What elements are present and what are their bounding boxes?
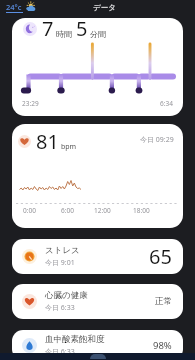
staticText: 時間 bbox=[56, 29, 72, 39]
staticText: 今日 6:33 bbox=[45, 347, 75, 357]
staticText: 98% bbox=[153, 339, 172, 352]
staticText: 23:29 bbox=[22, 99, 39, 108]
staticText: 6:34 bbox=[160, 99, 173, 108]
staticText: 0:00 bbox=[23, 206, 36, 215]
staticText: 6:00 bbox=[61, 206, 74, 215]
button[interactable]: 心臓の健康 bbox=[12, 284, 183, 319]
staticText: ストレス bbox=[45, 245, 80, 256]
staticText: 65 bbox=[149, 243, 172, 270]
staticText: 正常 bbox=[155, 296, 172, 307]
staticText: 24°c bbox=[6, 2, 22, 12]
button[interactable]: 血中酸素飽和度 bbox=[12, 330, 183, 360]
staticText: 今日 9:01 bbox=[45, 258, 75, 268]
staticText: bpm bbox=[61, 142, 77, 152]
staticText: データ bbox=[93, 3, 116, 12]
staticText: 12:00 bbox=[94, 206, 111, 215]
staticText: 心臓の健康 bbox=[45, 290, 88, 301]
staticText: 7 bbox=[42, 18, 54, 42]
staticText: 今日 6:33 bbox=[45, 303, 75, 313]
button[interactable]: ストレス bbox=[12, 239, 183, 274]
staticText: 分間 bbox=[90, 29, 106, 39]
staticText: 今日 09:29 bbox=[140, 135, 174, 145]
staticText: 18:00 bbox=[133, 206, 150, 215]
staticText: 81 bbox=[36, 128, 59, 155]
staticText: 血中酸素飽和度 bbox=[45, 334, 105, 345]
button[interactable]: 7 bbox=[12, 18, 183, 116]
staticText: 5 bbox=[76, 18, 88, 42]
button[interactable]: 81 bbox=[12, 124, 183, 228]
